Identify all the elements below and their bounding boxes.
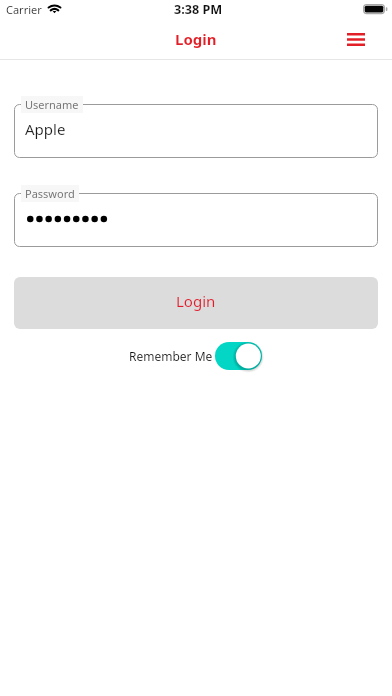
- staticText: Login: [176, 291, 216, 311]
- staticText: Login: [175, 29, 217, 49]
- staticText: Remember Me: [129, 348, 213, 364]
- staticText: 3:38 PM: [174, 1, 223, 18]
- button[interactable]: Apple: [14, 104, 378, 158]
- button[interactable]: Login: [14, 277, 378, 329]
- button[interactable]: [14, 193, 378, 247]
- staticText: Password: [25, 186, 75, 201]
- button[interactable]: Remember Me toggle: [215, 342, 262, 370]
- staticText: Apple: [25, 119, 66, 139]
- staticText: Carrier: [6, 2, 42, 17]
- button[interactable]: Menu: [340, 26, 371, 53]
- staticText: Username: [25, 97, 79, 112]
